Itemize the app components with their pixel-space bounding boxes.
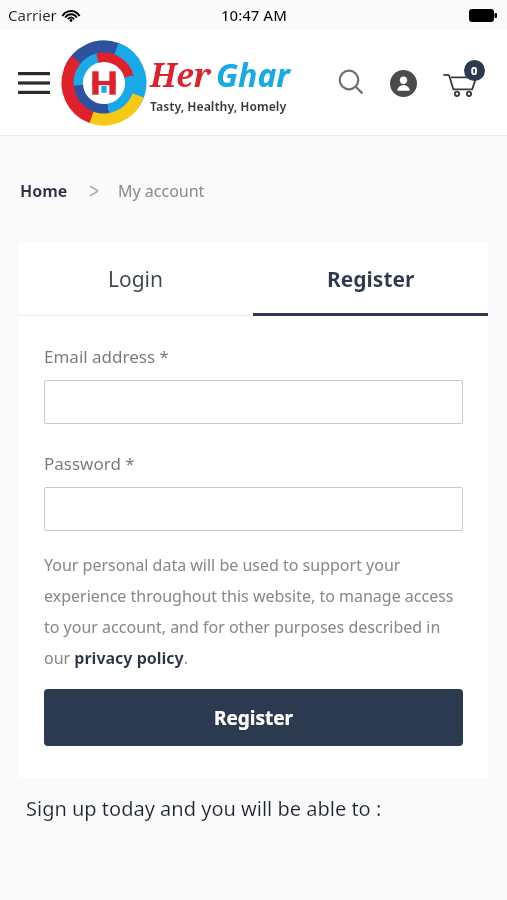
button[interactable]: My account bbox=[385, 65, 421, 101]
staticText: Her bbox=[150, 53, 211, 97]
button[interactable]: Password field bbox=[44, 487, 463, 531]
button[interactable]: Cart, 0 items bbox=[436, 58, 486, 108]
staticText: Home bbox=[20, 180, 68, 202]
staticText: 10:47 AM bbox=[221, 5, 287, 25]
button[interactable]: Register bbox=[253, 242, 488, 316]
button[interactable]: Her Ghar logo bbox=[64, 43, 144, 123]
staticText: My account bbox=[118, 180, 205, 202]
staticText: Email address * bbox=[44, 345, 169, 368]
button[interactable]: Email address field bbox=[44, 380, 463, 424]
staticText: Sign up today and you will be able to : bbox=[26, 795, 382, 822]
button[interactable]: Menu bbox=[14, 63, 54, 103]
staticText: Register bbox=[327, 265, 415, 294]
button[interactable]: Search bbox=[332, 63, 372, 103]
button[interactable]: Login bbox=[19, 242, 253, 316]
button[interactable]: Register bbox=[44, 689, 463, 746]
staticText: Login bbox=[108, 265, 164, 294]
staticText: 0 bbox=[471, 63, 478, 78]
staticText: Carrier bbox=[8, 5, 57, 25]
staticText: Ghar bbox=[216, 53, 290, 97]
button[interactable]: Home bbox=[20, 180, 68, 202]
staticText: Your personal data will be used to suppo… bbox=[44, 554, 463, 669]
staticText: Register bbox=[214, 705, 294, 731]
staticText: Tasty, Healthy, Homely bbox=[150, 98, 287, 114]
staticText: Password * bbox=[44, 452, 135, 475]
